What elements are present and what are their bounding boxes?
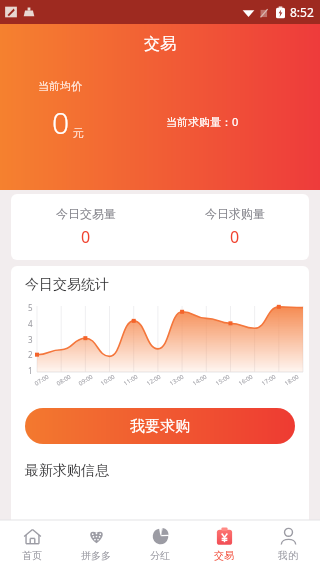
staticText: 我的	[278, 549, 298, 562]
staticText: 4	[28, 318, 33, 329]
staticText: 我要求购	[130, 417, 190, 436]
staticText: 今日交易量	[56, 206, 116, 221]
staticText: 0	[81, 226, 91, 248]
staticText: 13:00	[168, 372, 186, 388]
staticText: 交易	[214, 549, 234, 562]
staticText: 0	[230, 226, 240, 248]
staticText: 8:52	[290, 4, 314, 20]
staticText: 11:00	[122, 372, 140, 388]
button[interactable]: 交易	[192, 520, 256, 569]
button[interactable]: 首页	[0, 520, 64, 569]
staticText: 最新求购信息	[25, 462, 109, 480]
staticText: 1	[28, 365, 33, 376]
staticText: 18:00	[283, 372, 301, 388]
button[interactable]: 分红	[128, 520, 192, 569]
staticText: 分红	[150, 549, 170, 562]
staticText: 元	[73, 126, 84, 140]
staticText: 08:00	[55, 372, 73, 388]
button[interactable]: 我的	[256, 520, 320, 569]
button[interactable]: 拼多多	[64, 520, 128, 569]
staticText: 10:00	[99, 372, 117, 388]
staticText: 拼多多	[81, 549, 111, 562]
staticText: 今日交易统计	[25, 276, 109, 294]
staticText: 15:00	[214, 372, 232, 388]
staticText: 09:00	[77, 372, 95, 388]
staticText: 17:00	[260, 372, 278, 388]
staticText: 首页	[22, 549, 42, 562]
staticText: 当前均价	[38, 79, 82, 93]
staticText: 2	[28, 349, 33, 360]
staticText: 5	[28, 302, 33, 313]
button[interactable]: 今日求购量	[160, 194, 309, 260]
staticText: 07:00	[33, 372, 51, 388]
staticText: 今日求购量	[205, 206, 265, 221]
staticText: 16:00	[237, 372, 255, 388]
staticText: 0	[52, 102, 70, 143]
staticText: 当前求购量：0	[166, 114, 239, 129]
button[interactable]: 今日交易量	[11, 194, 160, 260]
staticText: 交易	[144, 34, 176, 54]
staticText: 12:00	[145, 372, 163, 388]
button[interactable]: 我要求购	[25, 408, 295, 444]
staticText: 14:00	[191, 372, 209, 388]
staticText: 3	[28, 334, 33, 345]
